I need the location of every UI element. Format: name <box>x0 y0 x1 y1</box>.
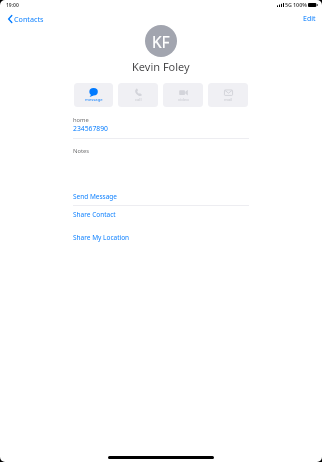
staticText: video <box>178 97 189 103</box>
button[interactable]: Contacts <box>3 12 49 26</box>
staticText: Share Contact <box>73 210 116 219</box>
staticText: 100% <box>293 1 307 8</box>
button[interactable]: Share Contact <box>73 208 249 221</box>
button[interactable]: call <box>118 83 158 107</box>
staticText: message <box>85 97 103 103</box>
button[interactable]: home <box>73 116 249 133</box>
staticText: Share My Location <box>73 233 130 242</box>
staticText: 19:00 <box>6 2 19 9</box>
button[interactable]: message <box>74 83 113 107</box>
staticText: call <box>135 97 142 103</box>
staticText: 5G <box>285 1 292 8</box>
button[interactable]: mail <box>208 83 248 107</box>
staticText: Notes <box>73 147 90 155</box>
staticText: 234567890 <box>73 124 108 133</box>
staticText: Kevin Foley <box>132 59 190 74</box>
staticText: Contacts <box>14 14 44 24</box>
staticText: KF <box>152 31 170 52</box>
staticText: mail <box>224 97 233 103</box>
button[interactable]: Share My Location <box>73 231 249 244</box>
button[interactable]: Send Message <box>73 190 249 203</box>
button[interactable]: Edit <box>298 12 321 26</box>
button[interactable]: video <box>163 83 203 107</box>
staticText: Send Message <box>73 192 118 201</box>
button[interactable]: Contact photo <box>145 25 177 57</box>
staticText: Edit <box>303 14 316 24</box>
staticText: home <box>73 116 89 124</box>
